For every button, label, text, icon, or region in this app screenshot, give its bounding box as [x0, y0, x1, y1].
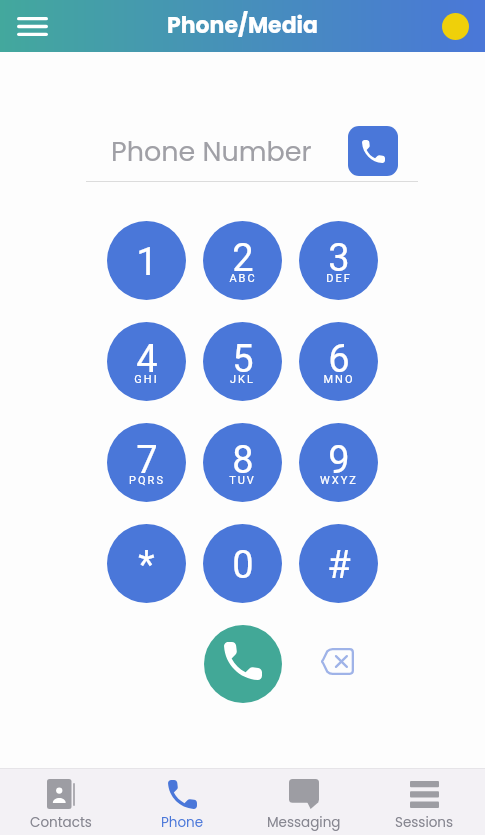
button[interactable]: 7: [107, 423, 186, 502]
staticText: 5: [232, 337, 254, 382]
staticText: JKL: [230, 373, 255, 386]
staticText: GHI: [134, 373, 159, 386]
staticText: 1: [136, 240, 158, 285]
button[interactable]: 9: [299, 423, 378, 502]
staticText: 9: [328, 438, 350, 483]
staticText: Phone/Media: [167, 10, 319, 41]
staticText: Phone: [161, 813, 204, 832]
staticText: 2: [232, 236, 254, 281]
staticText: Phone Number: [111, 133, 312, 171]
staticText: *: [138, 543, 155, 588]
button[interactable]: 1: [107, 221, 186, 300]
staticText: 7: [136, 438, 158, 483]
staticText: #: [327, 543, 351, 588]
staticText: 0: [232, 543, 254, 588]
button[interactable]: Sessions: [364, 769, 485, 835]
button[interactable]: 3: [299, 221, 378, 300]
staticText: ABC: [229, 272, 257, 285]
button[interactable]: Contacts: [0, 769, 122, 835]
button[interactable]: 5: [203, 322, 282, 401]
staticText: 8: [232, 438, 254, 483]
staticText: Contacts: [30, 813, 92, 832]
staticText: PQRS: [129, 474, 165, 487]
staticText: Messaging: [267, 813, 341, 832]
staticText: TUV: [229, 474, 256, 487]
staticText: 6: [328, 337, 350, 382]
button[interactable]: Account: [442, 13, 469, 40]
button[interactable]: #: [299, 524, 378, 603]
button[interactable]: 8: [203, 423, 282, 502]
button[interactable]: 2: [203, 221, 282, 300]
staticText: DEF: [326, 272, 352, 285]
button[interactable]: Open navigation menu: [8, 2, 56, 50]
button[interactable]: Call: [204, 625, 282, 703]
staticText: 3: [328, 236, 350, 281]
button[interactable]: *: [107, 524, 186, 603]
staticText: 4: [136, 337, 158, 382]
staticText: WXYZ: [320, 474, 358, 487]
button[interactable]: Delete: [315, 639, 359, 683]
staticText: Sessions: [395, 813, 454, 832]
button[interactable]: 0: [203, 524, 282, 603]
button[interactable]: 4: [107, 322, 186, 401]
button[interactable]: 6: [299, 322, 378, 401]
button[interactable]: Messaging: [243, 769, 364, 835]
button[interactable]: Phone: [122, 769, 243, 835]
button[interactable]: Call: [348, 126, 398, 176]
staticText: MNO: [323, 373, 355, 386]
